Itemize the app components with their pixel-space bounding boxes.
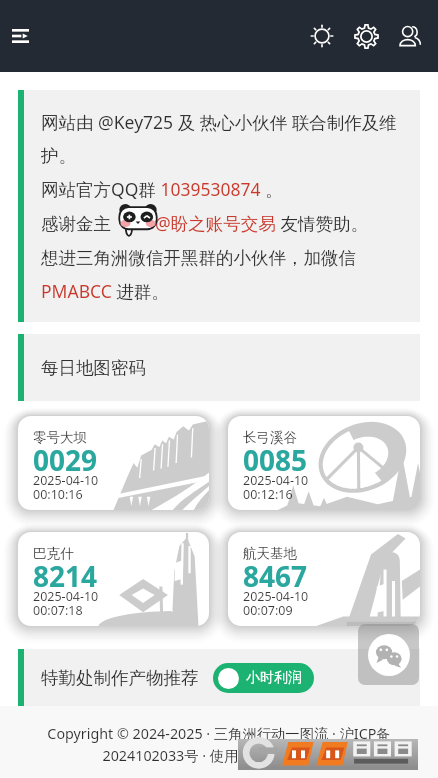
staticText: Copyright © 2024-2025 · 三角洲行动一图流 · 沪ICP备… bbox=[0, 724, 438, 766]
staticText: 零号大坝 bbox=[33, 429, 87, 446]
button[interactable]: WeChat bbox=[358, 624, 419, 685]
button[interactable] bbox=[228, 532, 420, 626]
staticText: 航天基地 bbox=[243, 545, 297, 562]
staticText: 00:10:16 bbox=[33, 486, 83, 503]
staticText: 0085 bbox=[243, 441, 308, 479]
staticText: 2025-04-10 bbox=[33, 588, 99, 605]
staticText: 2025-04-10 bbox=[243, 588, 309, 605]
staticText: 小时利润 bbox=[246, 669, 302, 687]
staticText: 00:12:16 bbox=[243, 486, 293, 503]
staticText: 8467 bbox=[243, 557, 308, 595]
button[interactable]: Menu bbox=[0, 16, 40, 56]
staticText: 2025-04-10 bbox=[243, 472, 309, 489]
staticText: 网站由 @Key725 及 热心小伙伴 联合制作及维护。 网站官方QQ群 103… bbox=[41, 110, 406, 303]
button[interactable] bbox=[18, 532, 209, 626]
staticText: 0029 bbox=[33, 441, 98, 479]
button[interactable]: Settings bbox=[344, 14, 388, 58]
staticText: 00:07:18 bbox=[33, 602, 83, 619]
button[interactable]: Brightness bbox=[300, 14, 344, 58]
button[interactable]: Account bbox=[388, 14, 432, 58]
staticText: 特勤处制作产物推荐 bbox=[41, 667, 199, 689]
staticText: 8214 bbox=[33, 557, 98, 595]
staticText: 每日地图密码 bbox=[41, 357, 146, 379]
button[interactable] bbox=[18, 416, 209, 510]
staticText: 长弓溪谷 bbox=[243, 429, 297, 446]
staticText: 巴克什 bbox=[33, 545, 74, 562]
button[interactable] bbox=[228, 416, 420, 510]
staticText: 00:07:09 bbox=[243, 602, 293, 619]
button[interactable]: 小时利润 bbox=[213, 663, 314, 693]
staticText: 2025-04-10 bbox=[33, 472, 99, 489]
